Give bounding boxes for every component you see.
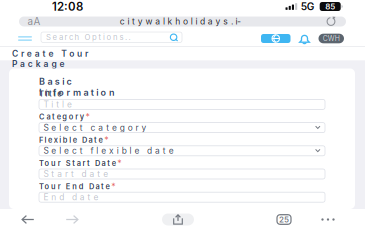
button[interactable]: Start date (39, 169, 325, 179)
staticText: * (104, 135, 108, 145)
button[interactable]: Reload (319, 16, 343, 26)
button[interactable]: Title (39, 99, 325, 109)
button[interactable]: Forward (50, 209, 94, 230)
button[interactable]: Menu (13, 31, 37, 46)
staticText: CWH (323, 34, 340, 43)
staticText: Category (39, 112, 84, 121)
staticText: Title (43, 99, 72, 109)
staticText: 5G (301, 0, 315, 13)
button[interactable]: Back (6, 209, 50, 230)
staticText: Search Options.. (46, 33, 130, 42)
button[interactable]: More (306, 209, 350, 230)
button[interactable]: Account (318, 34, 344, 43)
button[interactable]: Notifications (290, 31, 318, 46)
staticText: Title (39, 89, 61, 98)
staticText: * (117, 158, 121, 169)
staticText: End date (43, 192, 98, 202)
staticText: Basic Information (39, 76, 154, 87)
button[interactable]: End date (39, 192, 325, 202)
staticText: Create Tour Package (12, 48, 148, 59)
staticText: Tour Start Date (39, 159, 116, 168)
staticText: aA (27, 15, 40, 27)
button[interactable]: Select category (39, 123, 325, 133)
staticText: 25 (279, 215, 289, 224)
staticText: Tour End Date (39, 182, 110, 191)
staticText: * (111, 181, 115, 192)
button[interactable]: Search Options.. (41, 32, 182, 42)
staticText: Select flexible date (43, 146, 174, 156)
button[interactable]: Page settings (22, 16, 46, 26)
button[interactable]: Language (261, 34, 290, 43)
button[interactable]: Share (156, 209, 200, 230)
staticText: Flexible Date (39, 136, 103, 145)
staticText: 12:08 (52, 0, 83, 13)
staticText: Start date (43, 169, 108, 179)
staticText: * (85, 112, 89, 122)
staticText: citywalkholidays.in (120, 16, 245, 27)
button[interactable]: Select flexible date (39, 146, 325, 156)
button[interactable]: Tabs (262, 209, 306, 230)
staticText: Select category (43, 122, 146, 133)
staticText: 85 (325, 2, 335, 11)
